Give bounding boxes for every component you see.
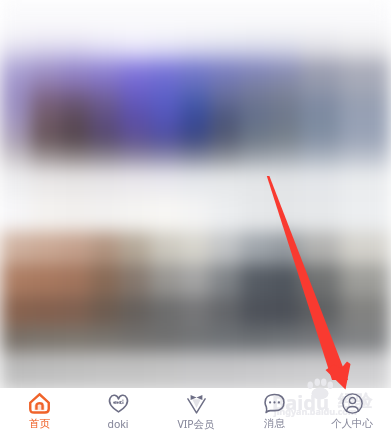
staticText: 消息 <box>264 417 285 430</box>
button[interactable]: VIP会员 <box>157 388 235 434</box>
button[interactable]: 首页 <box>0 388 79 434</box>
staticText: 首页 <box>29 417 50 430</box>
staticText: 经验 <box>338 391 372 412</box>
button[interactable]: 个人中心 <box>313 388 391 434</box>
staticText: doki <box>107 417 129 431</box>
button[interactable]: 消息 <box>235 388 313 434</box>
staticText: jingyan.baidu.com <box>274 405 357 417</box>
button[interactable]: doki <box>79 388 157 434</box>
staticText: 个人中心 <box>331 417 373 430</box>
staticText: VIP会员 <box>177 417 215 431</box>
staticText: Baidu <box>272 389 329 416</box>
